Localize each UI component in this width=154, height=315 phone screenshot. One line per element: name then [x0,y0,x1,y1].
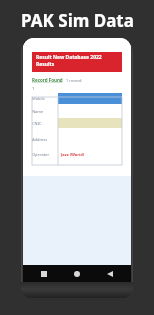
button[interactable]: CNIC [32,117,122,129]
staticText: Operator [32,152,50,157]
button[interactable]: Name [32,105,122,117]
staticText: Address [32,137,48,142]
staticText: Name [32,109,44,114]
staticText: PAK Sim Data [21,9,134,32]
staticText: CNIC [32,121,42,126]
button[interactable]: Result New Database 2022 Results [32,52,122,72]
button[interactable]: Mobile [32,92,122,105]
button[interactable]: Recent apps [37,267,51,281]
staticText: 1 record [66,78,82,83]
staticText: Mobile [32,96,45,101]
button[interactable]: Address [32,129,122,149]
staticText: Jazz (Warid) [61,152,85,157]
button[interactable]: Home [70,267,84,281]
staticText: 1 [32,86,35,91]
button[interactable]: Operator [32,149,122,160]
button[interactable]: Record Found [32,77,63,83]
button[interactable]: Back [103,267,117,281]
staticText: Result New Database 2022 Results [36,54,102,68]
